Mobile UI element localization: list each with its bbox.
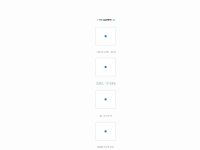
staticText: ELEVATION BB [97,145,114,148]
staticText: SECTION A [99,114,112,117]
button[interactable]: Figure [95,122,116,140]
button[interactable]: Figure [95,27,116,45]
button[interactable]: Figure [95,58,116,76]
button[interactable]: Figure [95,90,116,108]
staticText: THE ELEMENTS [97,18,114,21]
staticText: DETAIL OF BASE [96,82,116,85]
staticText: PLATE ONE SIDE [96,50,116,53]
